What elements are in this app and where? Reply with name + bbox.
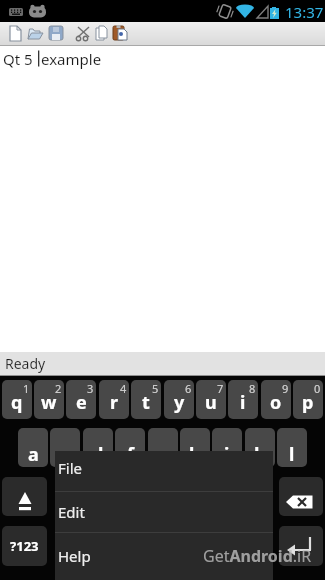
staticText: j [224,442,230,467]
button[interactable]: m [240,477,270,516]
button[interactable]: t [131,380,161,419]
staticText: GetAndroid.iR [203,545,312,567]
button[interactable]: n [210,477,240,516]
staticText: x [96,491,107,516]
staticText: s [60,442,70,467]
button[interactable] [25,23,45,45]
button[interactable]: j [212,428,242,467]
staticText: o [270,390,282,415]
staticText: d [92,442,104,467]
button[interactable]: ?123 [2,526,47,566]
staticText: w [41,390,57,415]
button[interactable]: w [34,380,64,419]
staticText: 3 [87,381,94,396]
staticText: 0 [314,381,321,396]
button[interactable]: p [293,380,323,419]
staticText: 8 [249,381,256,396]
staticText: 9 [282,381,289,396]
button[interactable] [279,477,323,516]
button[interactable]: x [86,477,116,516]
staticText: 7 [217,381,224,396]
button[interactable]: , [56,526,86,566]
staticText: m [246,491,264,516]
button[interactable]: i [228,380,258,419]
button[interactable]: u [196,380,226,419]
staticText: r [110,390,119,415]
staticText: p [302,390,314,415]
staticText: ?123 [10,537,39,555]
staticText: 4 [120,381,127,396]
staticText: c [127,491,137,516]
button[interactable]: b [179,477,209,516]
staticText: q [11,390,23,415]
button[interactable]: Edit [55,492,273,532]
button[interactable]: Qt 5 [0,46,325,352]
staticText: Help [58,546,91,566]
button[interactable] [111,23,131,45]
button[interactable] [73,23,93,45]
staticText: Edit [58,502,85,522]
button[interactable]: l [277,428,307,467]
staticText: h [189,442,201,467]
button[interactable]: e [66,380,96,419]
staticText: y [174,390,185,415]
staticText: 6 [185,381,192,396]
staticText: , [68,534,74,559]
button[interactable] [88,526,237,566]
button[interactable]: s [50,428,80,467]
staticText: 2 [55,381,62,396]
button[interactable]: y [164,380,194,419]
button[interactable]: g [148,428,178,467]
staticText: e [76,390,87,415]
staticText: . [252,534,258,559]
staticText: i [240,390,246,415]
button[interactable]: o [261,380,291,419]
staticText: b [188,491,200,516]
staticText: example [41,49,102,69]
button[interactable]: k [245,428,275,467]
staticText: a [28,442,39,467]
button[interactable]: c [117,477,147,516]
button[interactable]: v [148,477,178,516]
staticText: Ready [5,354,46,373]
staticText: t [142,390,150,415]
button[interactable]: Help [55,533,273,580]
staticText: f [127,442,134,467]
button[interactable]: d [83,428,113,467]
button[interactable] [92,23,112,45]
button[interactable]: r [99,380,129,419]
staticText: k [254,442,266,467]
button[interactable]: . [240,526,270,566]
button[interactable] [2,477,47,516]
button[interactable] [46,23,66,45]
staticText: 5 [152,381,159,396]
button[interactable]: File [55,451,273,491]
button[interactable]: h [180,428,210,467]
button[interactable]: f [115,428,145,467]
button[interactable]: z [56,477,86,516]
staticText: l [289,442,295,467]
staticText: 1 [23,381,30,396]
staticText: n [219,491,231,516]
button[interactable]: a [18,428,48,467]
staticText: Qt 5 [3,49,33,69]
staticText: z [67,491,76,516]
staticText: g [157,442,169,467]
staticText: v [158,491,169,516]
button[interactable]: q [2,380,32,419]
button[interactable] [279,526,323,566]
staticText: File [58,458,82,478]
button[interactable] [5,23,25,45]
staticText: 13:37 [285,2,324,22]
staticText: u [205,390,217,415]
